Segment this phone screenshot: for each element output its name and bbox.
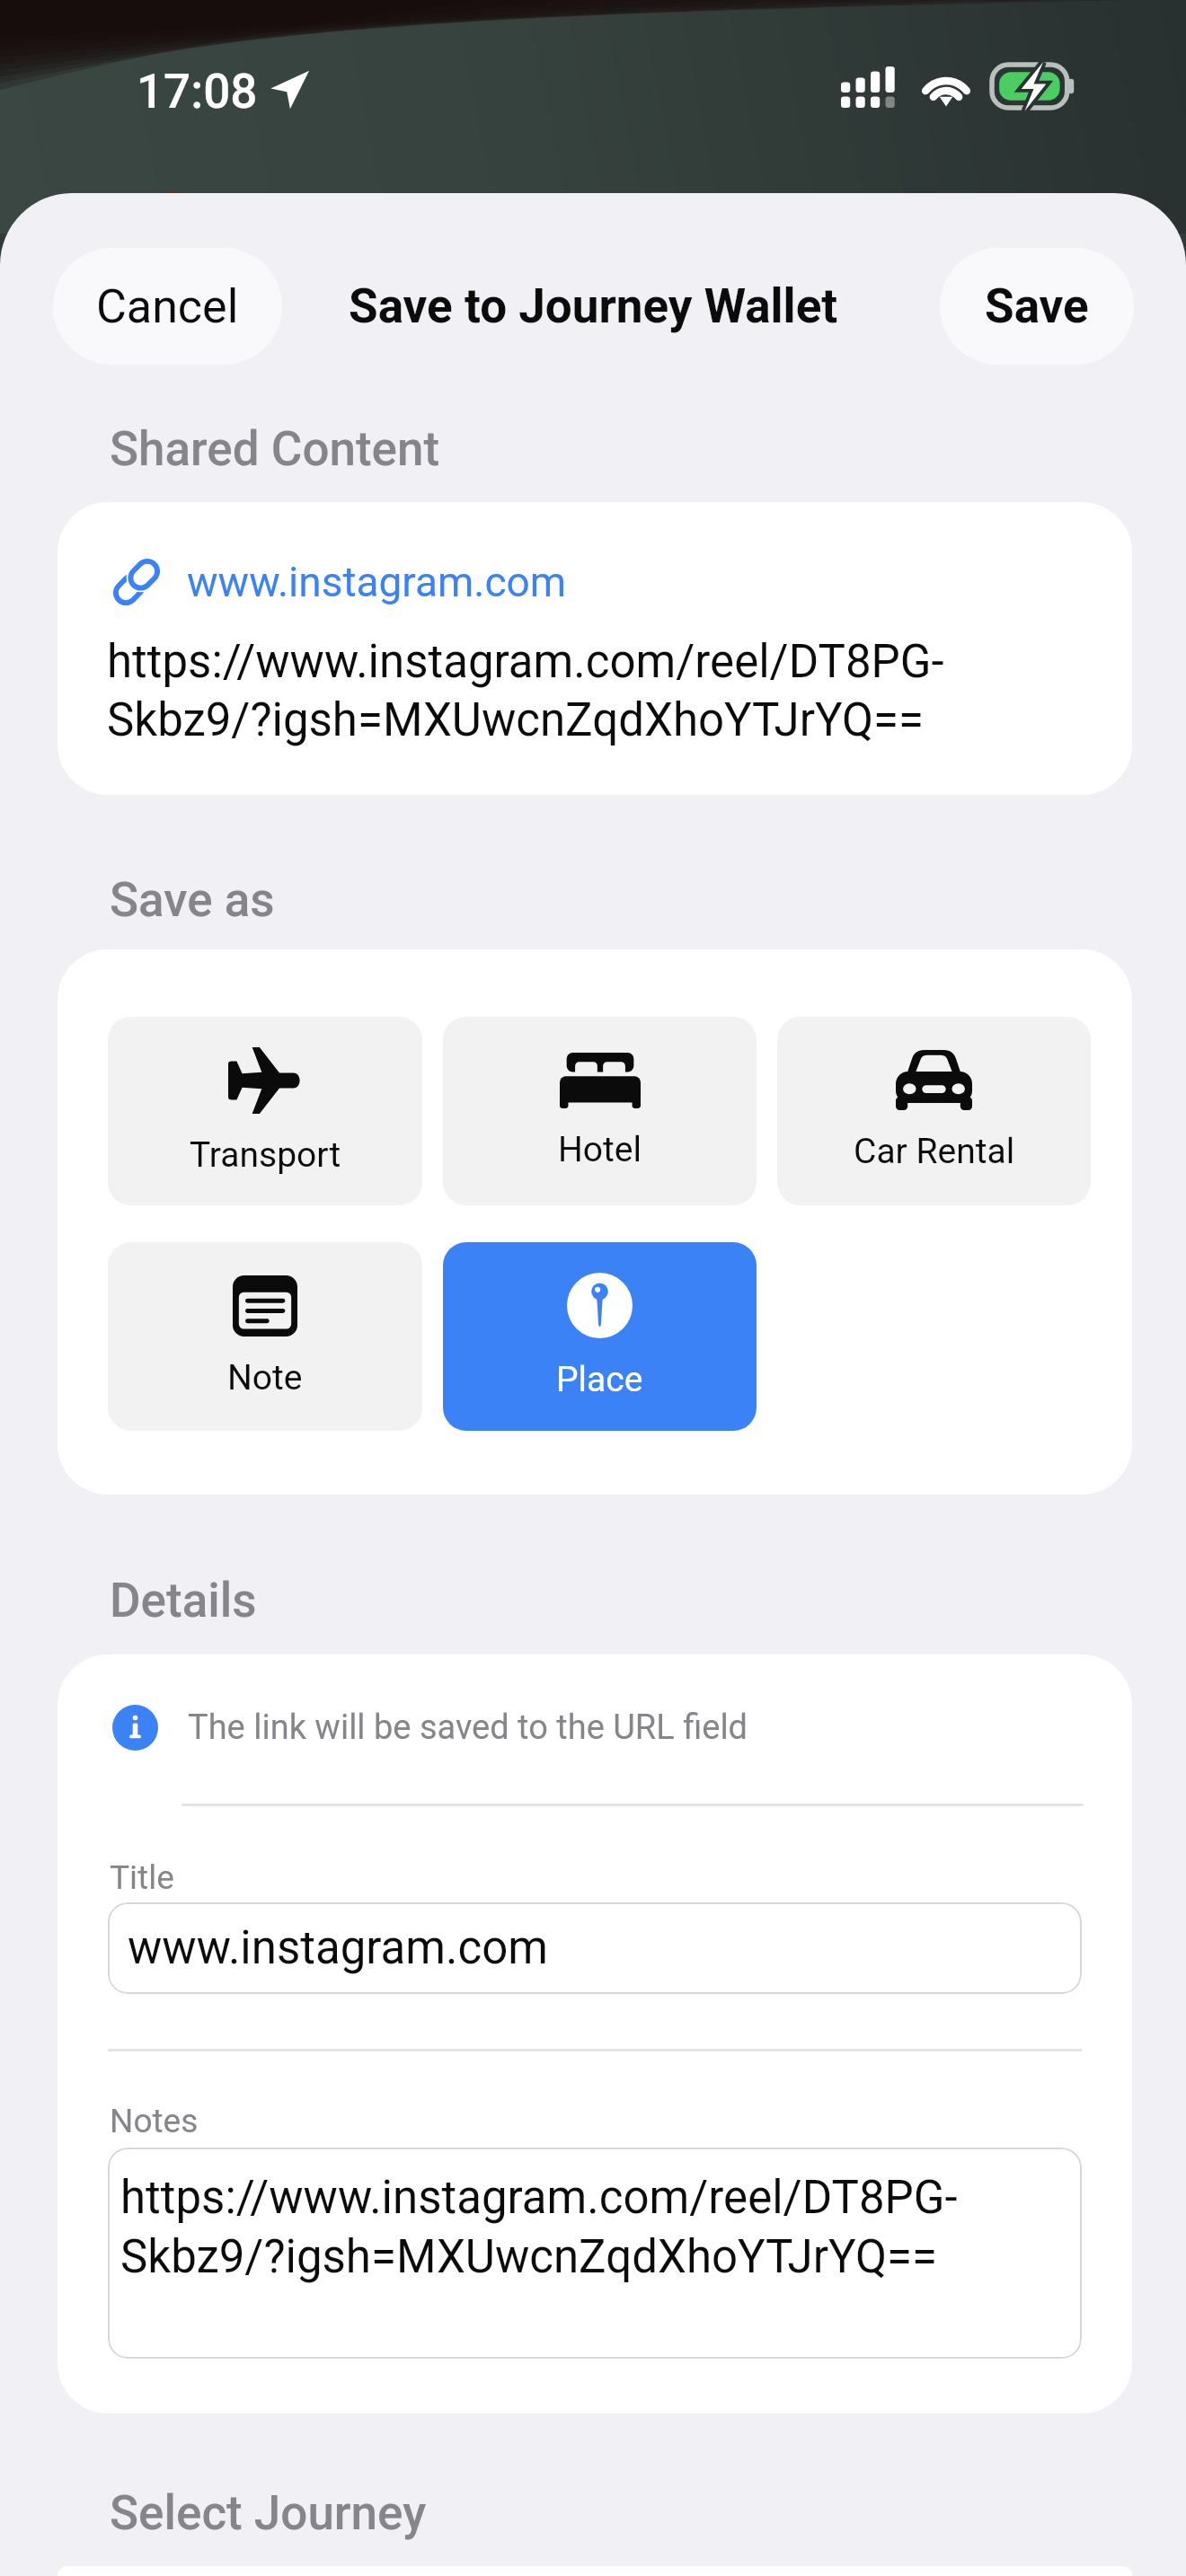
- button[interactable]: https://www.instagram.com/reel/DT8PG- Sk…: [108, 2148, 1082, 2359]
- staticText: https://www.instagram.com/reel/DT8PG- Sk…: [120, 2171, 958, 2284]
- button[interactable]: Car Rental: [777, 1017, 1091, 1205]
- staticText: Place: [556, 1359, 643, 1400]
- staticText: Hotel: [558, 1129, 642, 1170]
- staticText: www.instagram.com: [128, 1921, 548, 1975]
- staticText: Cancel: [96, 279, 239, 334]
- staticText: 17:08: [137, 64, 258, 119]
- button[interactable]: Select a journey: [58, 2566, 1132, 2576]
- staticText: Save: [985, 278, 1089, 334]
- staticText: Select Journey: [110, 2485, 427, 2541]
- button[interactable]: Save: [940, 248, 1134, 365]
- staticText: Note: [227, 1357, 303, 1398]
- button[interactable]: www.instagram.com: [58, 502, 1132, 795]
- staticText: https://www.instagram.com/reel/DT8PG- Sk…: [107, 635, 944, 747]
- button[interactable]: Transport: [108, 1017, 422, 1205]
- button[interactable]: Place: [443, 1242, 757, 1431]
- staticText: www.instagram.com: [187, 558, 567, 606]
- button[interactable]: www.instagram.com: [108, 1902, 1082, 1994]
- staticText: Transport: [190, 1134, 341, 1176]
- staticText: The link will be saved to the URL field: [188, 1707, 748, 1748]
- button[interactable]: Hotel: [443, 1017, 757, 1205]
- button[interactable]: Cancel: [53, 248, 282, 365]
- staticText: Details: [110, 1573, 257, 1628]
- staticText: Car Rental: [854, 1131, 1015, 1172]
- staticText: Save to Journey Wallet: [349, 278, 838, 334]
- staticText: Notes: [110, 2102, 199, 2140]
- staticText: Title: [110, 1858, 174, 1897]
- staticText: Shared Content: [110, 421, 440, 477]
- staticText: Save as: [110, 872, 275, 928]
- button[interactable]: Note: [108, 1242, 422, 1431]
